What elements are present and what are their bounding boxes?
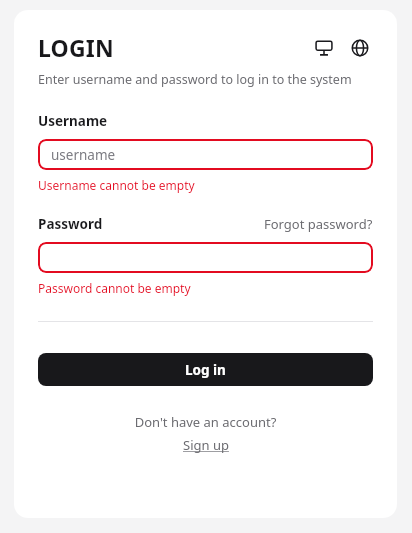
button[interactable]: Change language bbox=[347, 35, 373, 61]
staticText: Forgot password? bbox=[264, 215, 373, 233]
staticText: Sign up bbox=[183, 436, 229, 454]
staticText: Username bbox=[38, 112, 108, 130]
staticText: username bbox=[51, 146, 116, 164]
staticText: Log in bbox=[185, 361, 226, 379]
staticText: LOGIN bbox=[38, 32, 114, 63]
staticText: Password cannot be empty bbox=[38, 280, 191, 296]
button[interactable]: Desktop display mode bbox=[311, 35, 337, 61]
button[interactable]: Forgot password? bbox=[264, 215, 373, 233]
staticText: Don't have an account? bbox=[38, 413, 373, 431]
button[interactable]: username bbox=[38, 139, 373, 170]
staticText: Username cannot be empty bbox=[38, 177, 195, 193]
button[interactable]: Log in bbox=[38, 353, 373, 386]
staticText: Password bbox=[38, 215, 103, 233]
button[interactable] bbox=[38, 242, 373, 273]
button[interactable]: Sign up bbox=[183, 436, 229, 454]
staticText: Enter username and password to log in to… bbox=[38, 71, 352, 88]
